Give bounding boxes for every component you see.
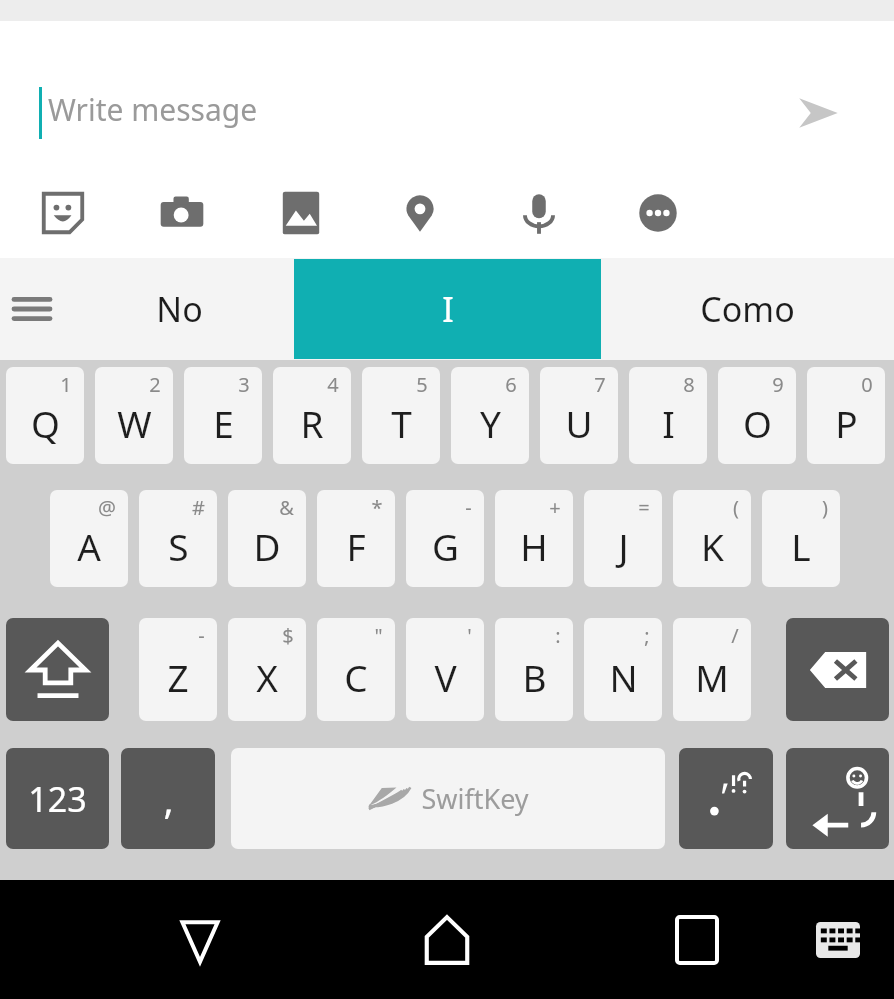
button[interactable]: Menu (0, 258, 64, 360)
staticText: # (192, 494, 205, 521)
button[interactable]: Camera (143, 174, 221, 252)
button[interactable]: Backspace (786, 618, 889, 721)
staticText: Write message (48, 89, 258, 130)
button[interactable]: Como (601, 258, 894, 360)
button[interactable]: Recents (657, 880, 737, 999)
button[interactable]: Voice (500, 174, 578, 252)
staticText: / (731, 622, 739, 649)
staticText: B (522, 652, 547, 702)
button[interactable]: U (540, 367, 618, 464)
button[interactable]: R (273, 367, 351, 464)
button[interactable]: Punctuation (679, 748, 773, 849)
staticText: R (300, 398, 324, 448)
staticText: ' (467, 622, 472, 649)
button[interactable]: Z (139, 618, 217, 721)
staticText: G (432, 521, 459, 571)
button[interactable]: I (629, 367, 707, 464)
button[interactable]: G (406, 490, 484, 587)
staticText: SwiftKey (421, 780, 529, 817)
staticText: S (168, 521, 189, 571)
staticText: 5 (416, 371, 428, 398)
staticText: 1 (60, 371, 72, 398)
staticText: No (156, 286, 203, 332)
button[interactable]: T (362, 367, 440, 464)
staticText: " (374, 622, 383, 649)
button[interactable]: V (406, 618, 484, 721)
staticText: N (609, 652, 638, 702)
button[interactable]: Enter (786, 748, 889, 849)
staticText: T (391, 398, 412, 448)
staticText: 0 (861, 371, 873, 398)
staticText: I (662, 398, 675, 448)
button[interactable]: J (584, 490, 662, 587)
staticText: & (279, 494, 294, 521)
staticText: U (565, 398, 593, 448)
button[interactable]: Sticker (24, 174, 102, 252)
button[interactable]: L (762, 490, 840, 587)
button[interactable]: Location (381, 174, 459, 252)
button[interactable]: W (95, 367, 173, 464)
staticText: 2 (149, 371, 161, 398)
staticText: ( (733, 494, 739, 521)
staticText: * (371, 494, 383, 521)
button[interactable]: , (121, 748, 215, 849)
staticText: H (520, 521, 548, 571)
staticText: Z (167, 652, 189, 702)
button[interactable]: B (495, 618, 573, 721)
staticText: , (163, 773, 174, 825)
staticText: ; (644, 622, 650, 649)
button[interactable]: F (317, 490, 395, 587)
button[interactable]: O (718, 367, 796, 464)
button[interactable]: More (619, 174, 697, 252)
button[interactable]: Shift (6, 618, 109, 721)
staticText: 6 (505, 371, 517, 398)
button[interactable]: Home (407, 880, 487, 999)
button[interactable]: H (495, 490, 573, 587)
staticText: $ (282, 622, 294, 649)
staticText: - (198, 622, 205, 649)
button[interactable]: D (228, 490, 306, 587)
staticText: V (434, 652, 457, 702)
staticText: 3 (238, 371, 250, 398)
button[interactable]: Send (780, 76, 854, 150)
staticText: + (549, 494, 561, 521)
button[interactable]: Gallery (262, 174, 340, 252)
staticText: I (442, 286, 454, 332)
staticText: P (835, 398, 858, 448)
button[interactable]: Space (231, 748, 665, 849)
staticText: @ (98, 494, 116, 521)
staticText: Q (31, 398, 60, 448)
button[interactable]: No (64, 258, 294, 360)
staticText: D (253, 521, 281, 571)
staticText: C (344, 652, 368, 702)
staticText: 8 (683, 371, 695, 398)
button[interactable]: 123 (6, 748, 109, 849)
button[interactable]: N (584, 618, 662, 721)
button[interactable]: I (294, 259, 601, 359)
staticText: W (117, 398, 152, 448)
staticText: E (213, 398, 234, 448)
button[interactable]: P (807, 367, 885, 464)
button[interactable]: E (184, 367, 262, 464)
button[interactable]: K (673, 490, 751, 587)
staticText: Como (700, 286, 795, 332)
button[interactable]: X (228, 618, 306, 721)
staticText: M (695, 652, 729, 702)
staticText: J (618, 521, 629, 571)
staticText: ) (822, 494, 828, 521)
staticText: O (743, 398, 772, 448)
staticText: A (77, 521, 101, 571)
button[interactable]: Q (6, 367, 84, 464)
button[interactable]: A (50, 490, 128, 587)
button[interactable]: Switch keyboard (800, 880, 876, 999)
button[interactable]: M (673, 618, 751, 721)
button[interactable]: S (139, 490, 217, 587)
button[interactable]: Y (451, 367, 529, 464)
button[interactable]: Back (160, 880, 240, 999)
staticText: 4 (327, 371, 339, 398)
button[interactable]: C (317, 618, 395, 721)
staticText: L (791, 521, 811, 571)
staticText: K (701, 521, 724, 571)
staticText: 123 (28, 776, 87, 822)
staticText: 7 (594, 371, 606, 398)
